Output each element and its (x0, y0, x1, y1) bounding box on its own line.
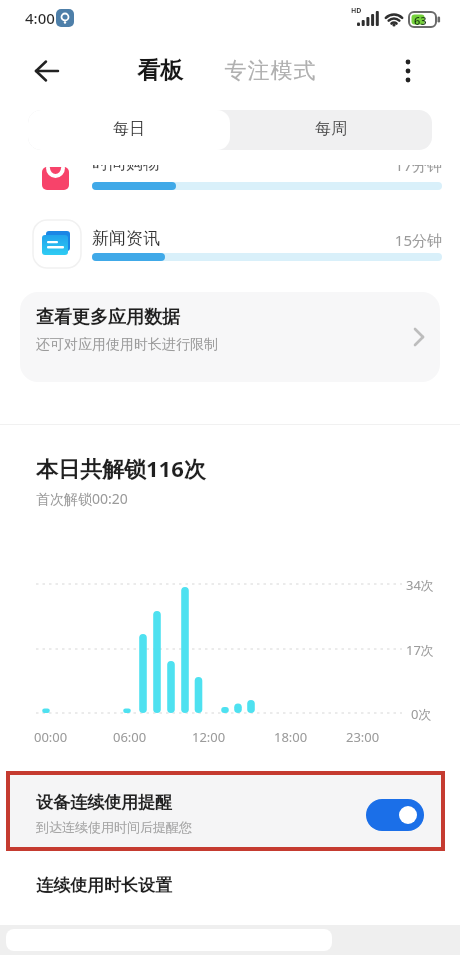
staticText: 34次 (406, 576, 434, 594)
button[interactable] (388, 52, 428, 90)
button[interactable] (22, 52, 70, 90)
button[interactable]: 设备连续使用提醒 (10, 775, 441, 847)
staticText: 4:00 (25, 8, 55, 28)
staticText: 连续使用时长设置 (36, 875, 172, 896)
staticText: 每日 (113, 119, 145, 139)
staticText: 查看更多应用数据 (36, 306, 180, 329)
staticText: HD (351, 6, 362, 16)
staticText: 每周 (315, 119, 347, 139)
staticText: 设备连续使用提醒 (36, 792, 172, 813)
staticText: 首次解锁00:20 (36, 489, 128, 508)
staticText: 06:00 (113, 728, 147, 746)
button[interactable]: 专注模式 (220, 56, 324, 88)
staticText: 还可对应用使用时长进行限制 (36, 336, 218, 354)
staticText: 63 (414, 13, 427, 28)
staticText: 新闻资讯 (92, 228, 160, 249)
staticText: 17分钟 (342, 155, 442, 175)
staticText: 18:00 (274, 728, 308, 746)
button[interactable]: 看板 (130, 56, 196, 88)
button[interactable] (366, 799, 424, 831)
staticText: 00:00 (34, 728, 68, 746)
button[interactable]: 连续使用时长设置 (0, 855, 460, 917)
staticText: 0次 (411, 705, 432, 723)
staticText: 看板 (137, 56, 183, 85)
button[interactable]: 新闻资讯 (0, 212, 460, 274)
button[interactable]: 每周 (230, 110, 432, 150)
staticText: 到达连续使用时间后提醒您 (36, 819, 192, 835)
staticText: 时间购物 (92, 153, 160, 174)
staticText: 本日共解锁116次 (36, 453, 206, 483)
staticText: 专注模式 (224, 57, 316, 85)
button[interactable]: 时间购物 (0, 150, 460, 200)
button[interactable]: 每日 (28, 110, 230, 150)
staticText: 17次 (406, 641, 434, 659)
button[interactable]: 查看更多应用数据 (20, 292, 440, 382)
staticText: 15分钟 (342, 230, 442, 250)
staticText: 23:00 (346, 728, 380, 746)
staticText: 12:00 (192, 728, 226, 746)
